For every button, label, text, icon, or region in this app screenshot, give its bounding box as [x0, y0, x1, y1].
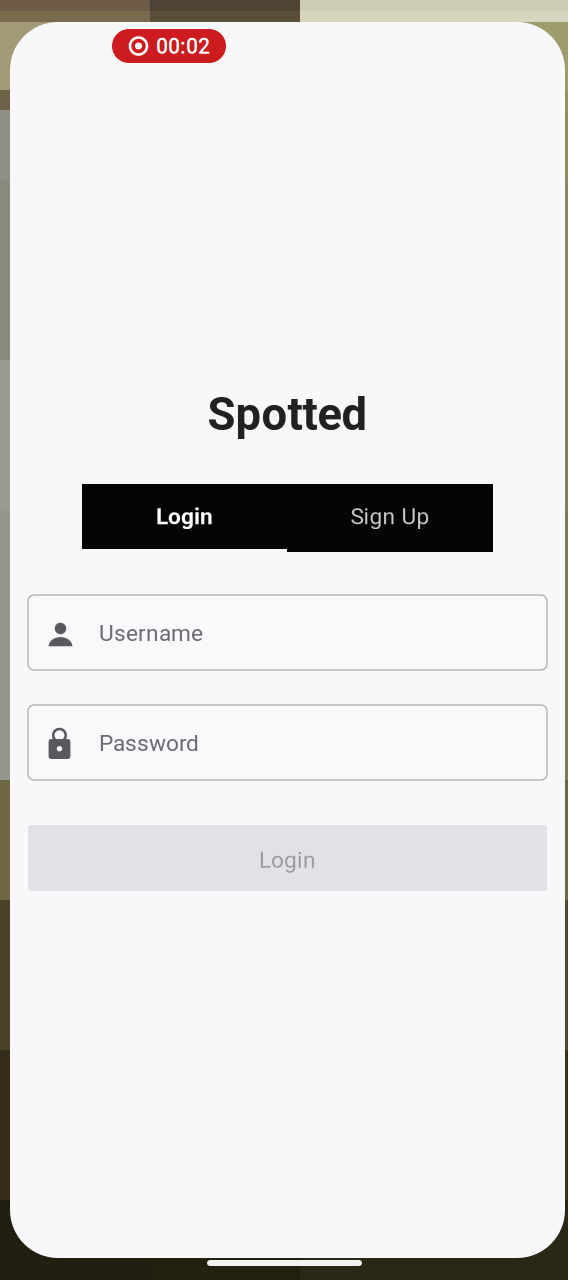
button[interactable]: Username [28, 595, 547, 670]
button[interactable]: Sign Up [287, 484, 493, 549]
button[interactable]: Login [28, 825, 547, 891]
button[interactable]: Password [28, 705, 547, 780]
staticText: Sign Up [350, 503, 429, 530]
staticText: 00:02 [156, 34, 210, 59]
staticText: Login [259, 847, 316, 873]
button[interactable]: Login [82, 484, 287, 549]
staticText: Spotted [207, 388, 367, 441]
staticText: Username [99, 620, 203, 647]
staticText: Password [99, 730, 199, 757]
staticText: Login [156, 503, 213, 530]
